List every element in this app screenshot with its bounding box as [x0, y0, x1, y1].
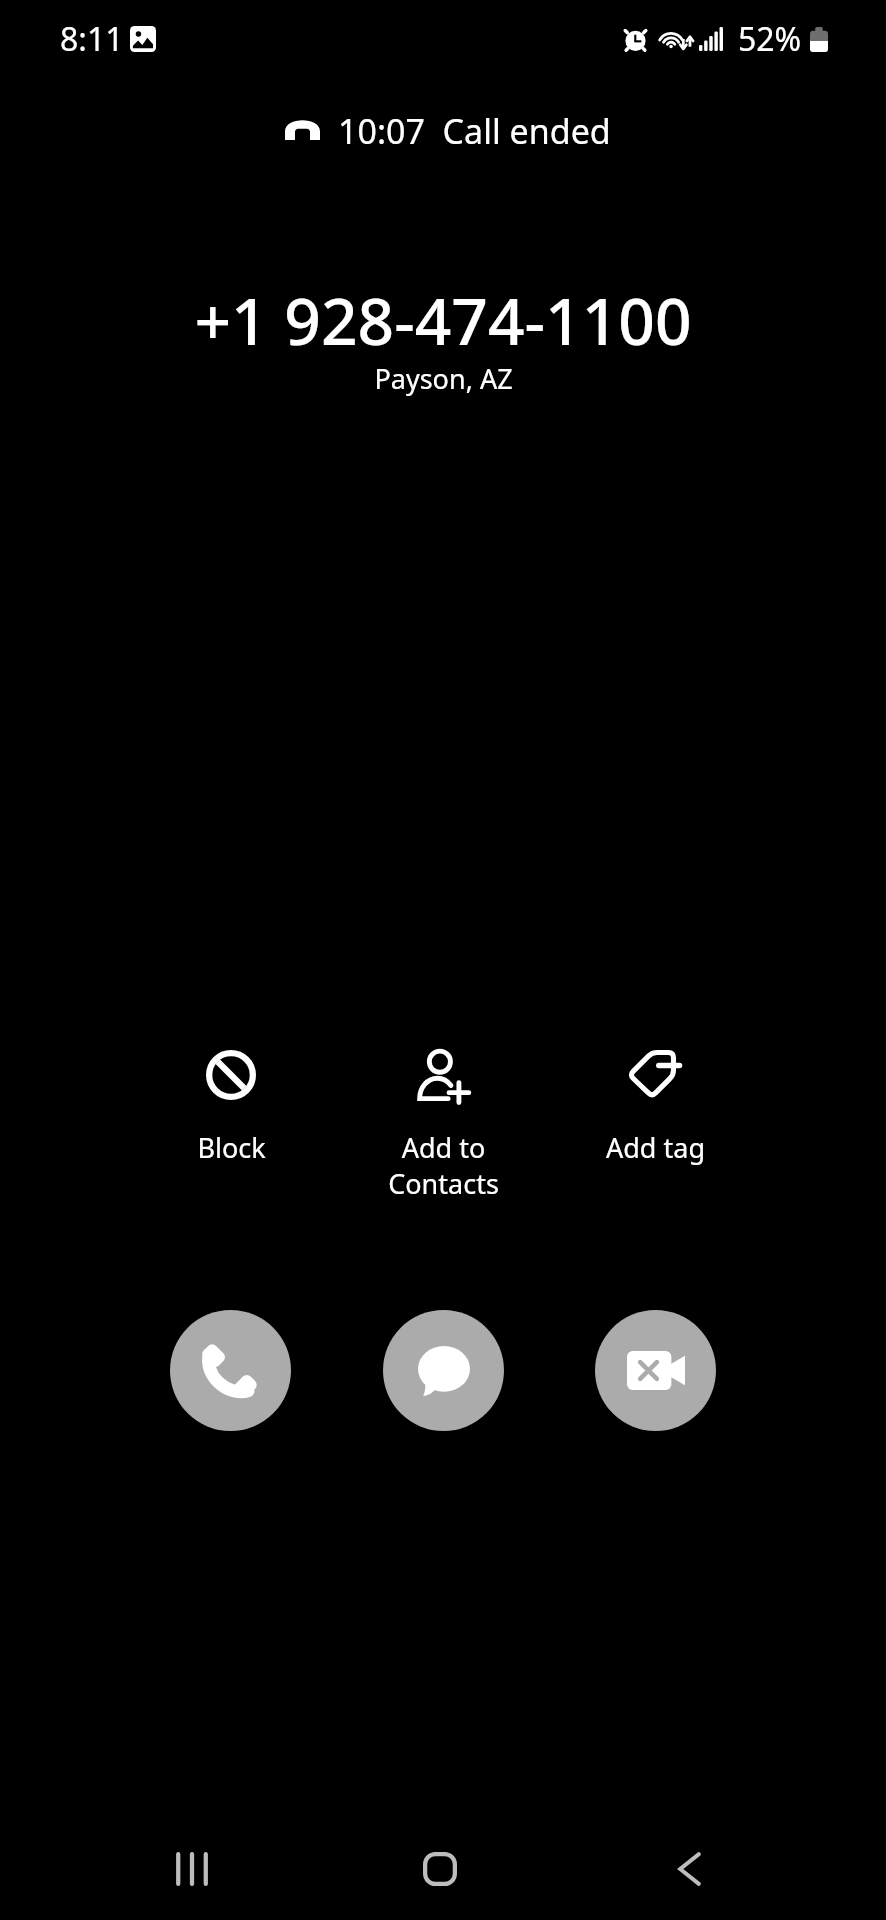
staticText: +1 928-474-1100: [194, 277, 692, 364]
button[interactable]: Message: [383, 1310, 504, 1431]
staticText: Add tag: [606, 1129, 705, 1166]
staticText: 52%: [738, 17, 802, 61]
button[interactable]: Add tag: [555, 1045, 755, 1166]
staticText: 10:07 Call ended: [338, 108, 611, 154]
button[interactable]: Block: [131, 1045, 331, 1166]
staticText: Add to Contacts: [388, 1129, 499, 1202]
button[interactable]: Add to Contacts: [343, 1045, 543, 1202]
staticText: 8:11: [60, 17, 124, 61]
button[interactable]: Home: [380, 1825, 500, 1920]
staticText: Payson, AZ: [374, 360, 513, 397]
button[interactable]: Video call unavailable: [595, 1310, 716, 1431]
button[interactable]: Back: [628, 1825, 748, 1920]
staticText: Block: [197, 1129, 266, 1166]
button[interactable]: Call: [170, 1310, 291, 1431]
button[interactable]: Recents: [132, 1825, 252, 1920]
